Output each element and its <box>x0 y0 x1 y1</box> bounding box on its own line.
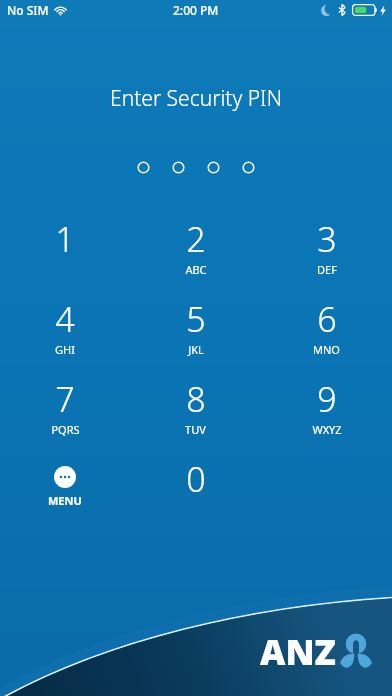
staticText: 2 <box>186 216 206 262</box>
staticText: 7 <box>55 376 75 422</box>
button[interactable]: 4 <box>0 294 130 374</box>
button[interactable]: 8 <box>130 374 261 454</box>
staticText: JKL <box>188 342 204 357</box>
staticText: 6 <box>317 296 337 342</box>
staticText: GHI <box>55 342 75 357</box>
button[interactable]: 9 <box>261 374 392 454</box>
button[interactable]: 3 <box>261 214 392 294</box>
button[interactable]: 0 <box>130 454 261 534</box>
staticText: PQRS <box>51 422 80 437</box>
staticText: 2:00 PM <box>173 2 219 18</box>
staticText: 5 <box>186 296 206 342</box>
staticText: 0 <box>186 456 206 502</box>
staticText: No SIM <box>7 2 49 18</box>
button[interactable]: 2 <box>130 214 261 294</box>
button[interactable]: 6 <box>261 294 392 374</box>
staticText: WXYZ <box>312 422 342 437</box>
staticText: MNO <box>313 342 340 357</box>
button[interactable]: 5 <box>130 294 261 374</box>
staticText: 3 <box>317 216 337 262</box>
staticText: 1 <box>55 216 75 262</box>
button[interactable]: Menu <box>48 454 82 534</box>
staticText: 4 <box>55 296 75 342</box>
staticText: TUV <box>185 422 206 437</box>
button[interactable]: 7 <box>0 374 130 454</box>
staticText: 8 <box>186 376 206 422</box>
staticText: 9 <box>317 376 337 422</box>
staticText: MENU <box>48 493 82 508</box>
staticText: ANZ <box>260 628 336 676</box>
staticText: Enter Security PIN <box>110 84 282 113</box>
staticText: DEF <box>317 262 337 277</box>
button[interactable]: 1 <box>0 214 130 294</box>
staticText: ABC <box>185 262 207 277</box>
